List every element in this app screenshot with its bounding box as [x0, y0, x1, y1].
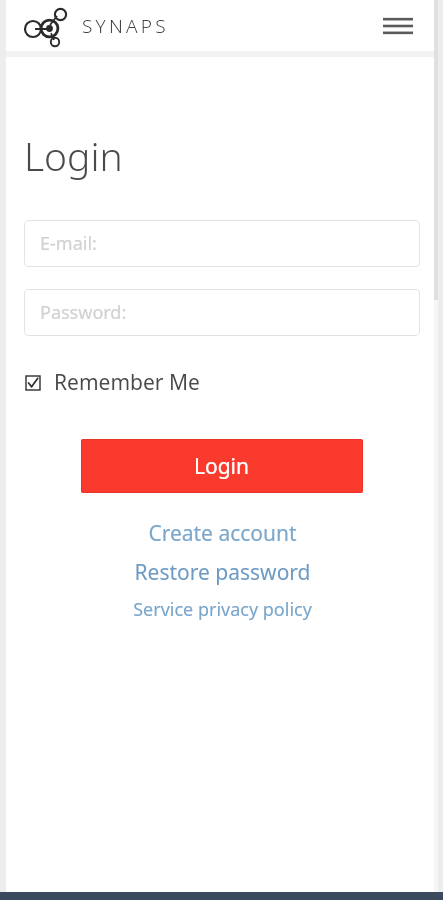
- staticText: Login: [24, 129, 123, 182]
- button[interactable]: Restore password: [126, 554, 319, 591]
- staticText: E-mail:: [40, 231, 97, 256]
- staticText: Login: [194, 452, 250, 481]
- staticText: Remember Me: [54, 368, 200, 397]
- staticText: Create account: [148, 519, 297, 548]
- staticText: SYNAPS: [82, 13, 169, 39]
- staticText: Service privacy policy: [133, 597, 312, 622]
- button[interactable]: E-mail:: [24, 220, 420, 267]
- button[interactable]: Service privacy policy: [125, 593, 320, 626]
- button[interactable]: Password:: [24, 289, 420, 336]
- staticText: Restore password: [134, 558, 311, 587]
- button[interactable]: SYNAPS: [22, 5, 169, 47]
- button[interactable]: Open menu: [376, 4, 420, 48]
- button[interactable]: Login: [81, 439, 363, 493]
- button[interactable]: Remember Me: [24, 362, 202, 403]
- staticText: Password:: [40, 300, 127, 325]
- button[interactable]: Create account: [140, 515, 305, 552]
